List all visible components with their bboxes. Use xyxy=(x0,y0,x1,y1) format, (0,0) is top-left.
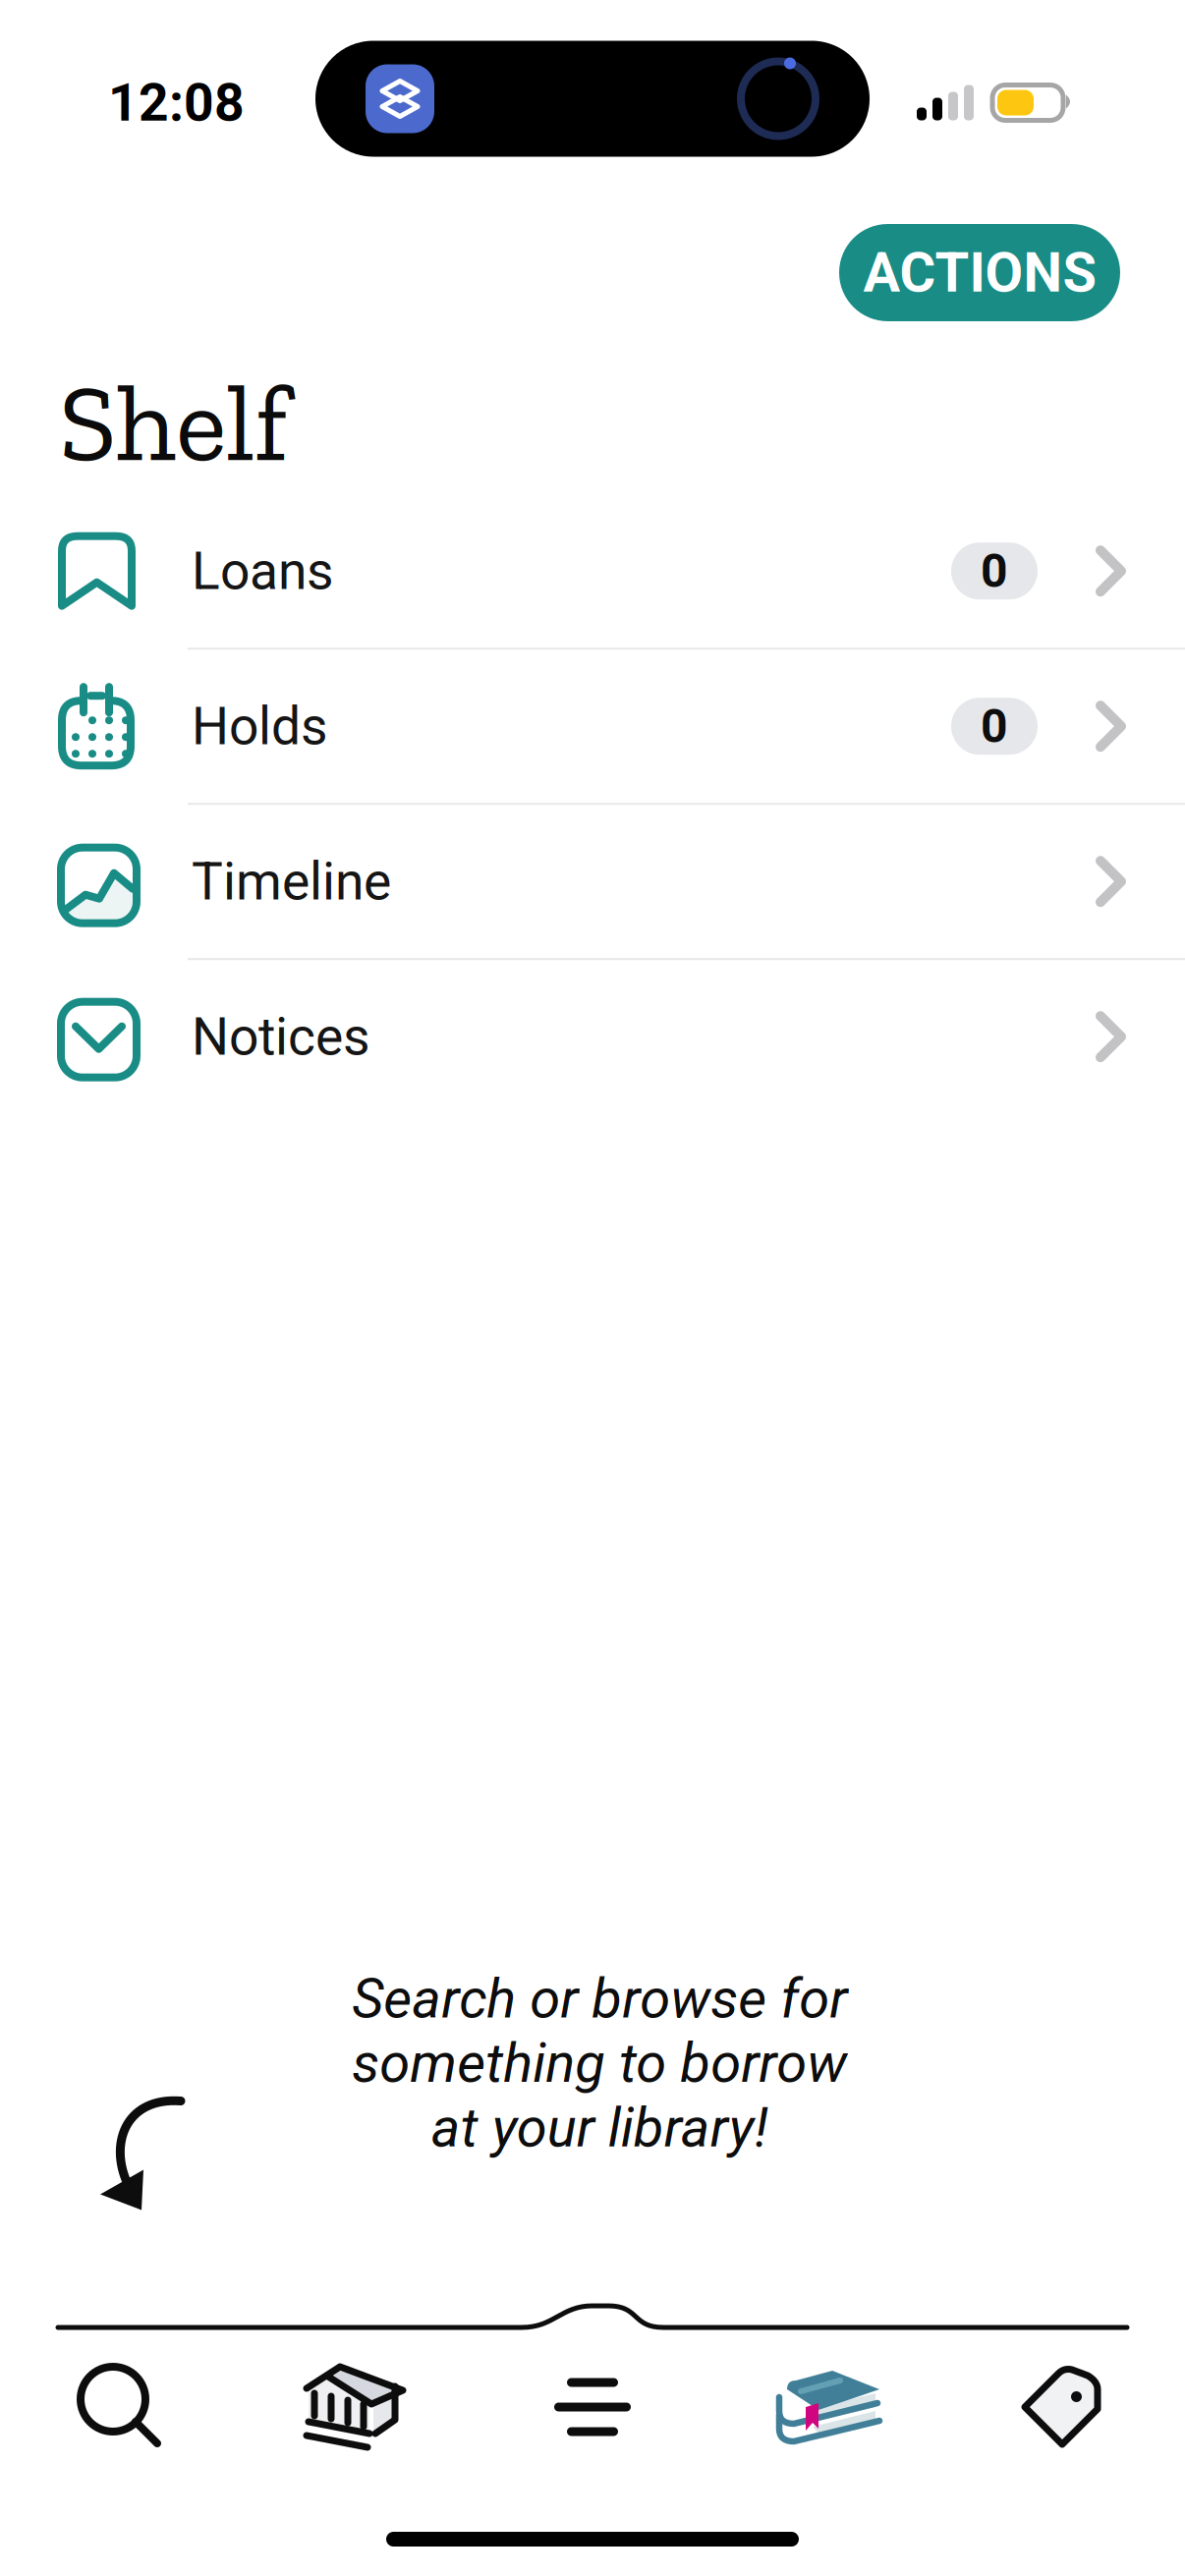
button[interactable]: Timeline xyxy=(0,805,1185,958)
staticText: 0 xyxy=(981,699,1008,754)
button[interactable]: Holds xyxy=(0,650,1185,803)
staticText: ACTIONS xyxy=(863,240,1096,305)
staticText: Holds xyxy=(192,695,328,757)
button[interactable]: Tags xyxy=(948,2348,1185,2466)
staticText: Notices xyxy=(192,1006,370,1067)
button[interactable]: Search xyxy=(0,2348,237,2466)
staticText: 12:08 xyxy=(108,72,245,133)
staticText: Timeline xyxy=(192,851,391,912)
staticText: Search or browse for something to borrow… xyxy=(352,1966,847,2160)
staticText: 0 xyxy=(981,543,1008,599)
staticText: Loans xyxy=(192,540,334,602)
button[interactable]: Library xyxy=(237,2348,474,2466)
button[interactable]: ACTIONS xyxy=(839,224,1120,321)
staticText: Shelf xyxy=(59,359,289,487)
button[interactable]: Menu xyxy=(474,2348,711,2466)
button[interactable]: Notices xyxy=(0,960,1185,1113)
button[interactable]: Shelf xyxy=(711,2348,948,2466)
button[interactable]: Loans xyxy=(0,494,1185,648)
